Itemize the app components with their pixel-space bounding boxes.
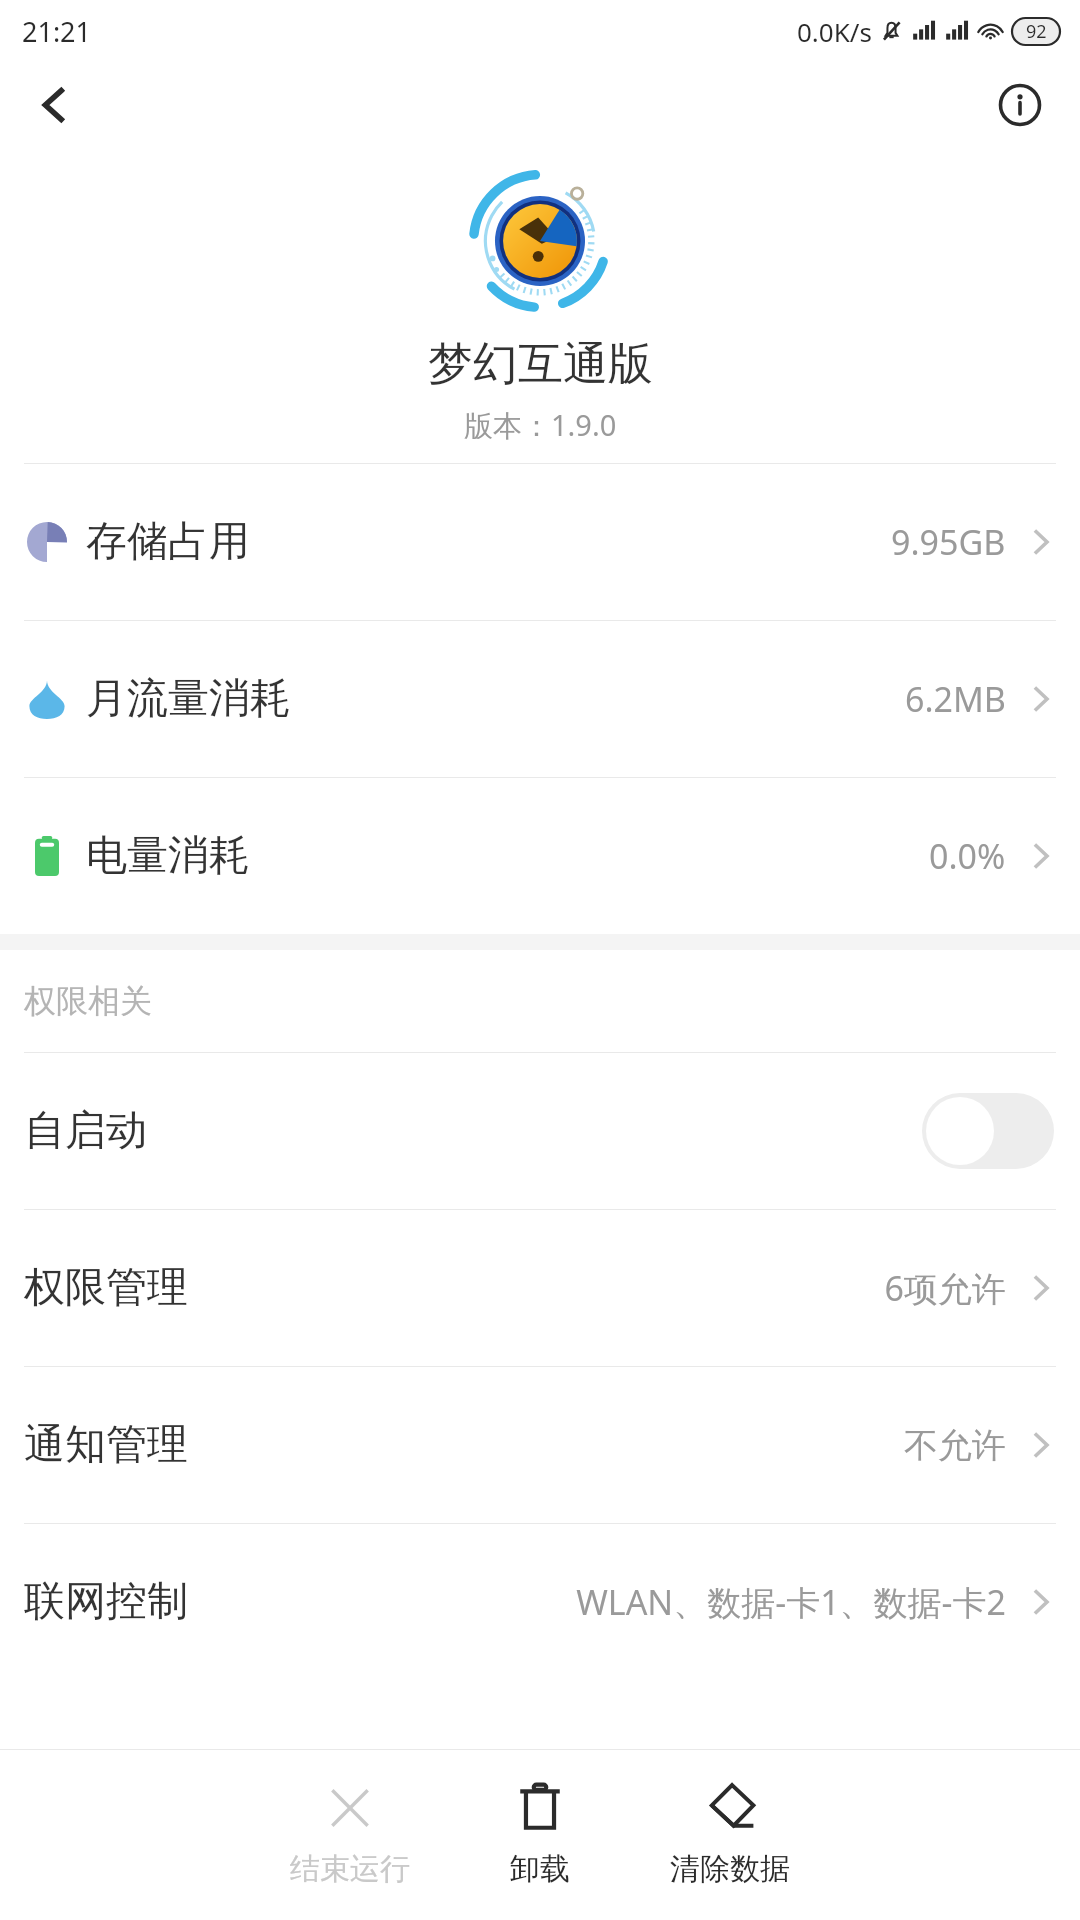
button[interactable]: 通知管理: [0, 1367, 1080, 1523]
staticText: 权限相关: [24, 981, 152, 1021]
staticText: 权限管理: [24, 1262, 188, 1314]
button[interactable]: 电量消耗: [0, 778, 1080, 934]
button[interactable]: 存储占用: [0, 464, 1080, 620]
staticText: 9.95GB: [891, 519, 1006, 565]
button[interactable]: 月流量消耗: [0, 621, 1080, 777]
staticText: 0.0K/s: [797, 14, 872, 49]
button[interactable]: 清除数据: [635, 1750, 825, 1920]
button[interactable]: App info: [982, 67, 1058, 143]
staticText: 存储占用: [86, 516, 250, 568]
staticText: 版本：1.9.0: [464, 405, 617, 445]
staticText: 联网控制: [24, 1576, 188, 1628]
staticText: 6.2MB: [905, 676, 1006, 722]
button[interactable]: Back: [16, 67, 92, 143]
button[interactable]: 卸载: [445, 1750, 635, 1920]
button[interactable]: 联网控制: [0, 1524, 1080, 1680]
button[interactable]: 自启动: [0, 1053, 1080, 1209]
staticText: 电量消耗: [86, 830, 250, 882]
staticText: 通知管理: [24, 1419, 188, 1471]
staticText: 清除数据: [670, 1850, 790, 1888]
staticText: 梦幻互通版: [428, 336, 653, 393]
button[interactable]: 结束运行: [255, 1750, 445, 1920]
staticText: 月流量消耗: [86, 673, 291, 725]
staticText: WLAN、数据-卡1、数据-卡2: [576, 1579, 1006, 1625]
staticText: 0.0%: [929, 833, 1006, 879]
staticText: 21:21: [22, 13, 92, 50]
staticText: 不允许: [904, 1424, 1006, 1467]
staticText: 92: [1026, 19, 1047, 44]
staticText: 自启动: [24, 1105, 147, 1157]
staticText: 6项允许: [884, 1265, 1006, 1311]
staticText: 卸载: [510, 1850, 570, 1888]
button[interactable]: 权限管理: [0, 1210, 1080, 1366]
staticText: 结束运行: [290, 1850, 410, 1888]
